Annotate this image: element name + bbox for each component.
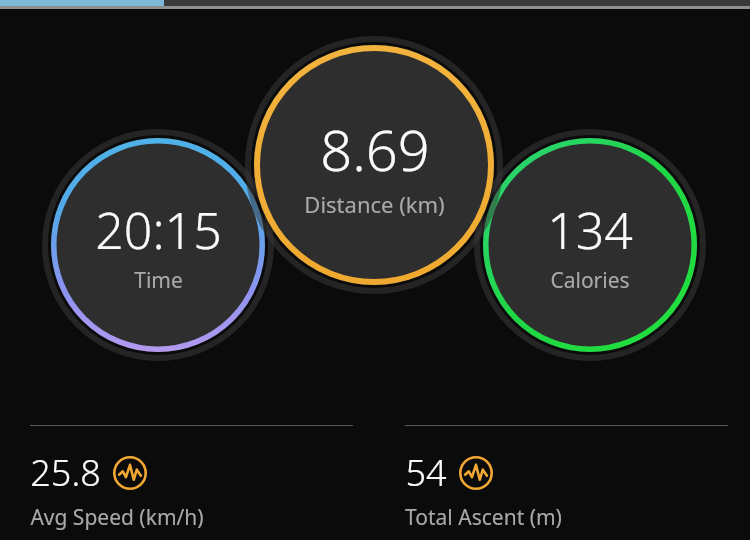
button[interactable]: 8.69 (247, 38, 501, 292)
staticText: Distance (km) (304, 189, 445, 219)
staticText: Total Ascent (m) (405, 503, 562, 532)
staticText: Calories (550, 266, 630, 295)
other: Activity detail (113, 456, 147, 490)
staticText: 20:15 (95, 196, 222, 264)
button[interactable]: 134 (476, 131, 704, 359)
button[interactable]: 20:15 (44, 131, 272, 359)
staticText: 8.69 (320, 111, 430, 187)
staticText: Avg Speed (km/h) (30, 503, 204, 532)
staticText: 25.8 (30, 448, 101, 497)
button[interactable]: 54 (375, 425, 750, 532)
staticText: 134 (547, 196, 633, 264)
staticText: Time (134, 266, 183, 295)
other: Activity detail (459, 456, 493, 490)
button[interactable]: 25.8 (0, 425, 375, 532)
staticText: 54 (405, 448, 447, 497)
